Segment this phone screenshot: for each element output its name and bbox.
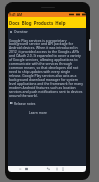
button[interactable]: Tabs bbox=[24, 167, 29, 171]
button[interactable]: Overview bbox=[10, 30, 28, 34]
button[interactable]: More options bbox=[61, 167, 65, 171]
button[interactable]: Release notes bbox=[10, 101, 36, 105]
button[interactable]: Bookmark bbox=[55, 167, 59, 171]
staticText: Google Play services is a proprietary ba… bbox=[9, 38, 83, 98]
staticText: 9:41 AM bbox=[9, 12, 23, 17]
button[interactable]: Back bbox=[18, 167, 23, 171]
staticText: Docs Blog Products Help bbox=[9, 20, 66, 26]
staticText: Learn more bbox=[29, 110, 47, 114]
button[interactable]: Share bbox=[46, 167, 51, 171]
staticText: Release notes bbox=[14, 101, 36, 105]
staticText: Overview bbox=[14, 30, 28, 34]
button[interactable]: Docs Blog Products Help bbox=[8, 17, 86, 28]
